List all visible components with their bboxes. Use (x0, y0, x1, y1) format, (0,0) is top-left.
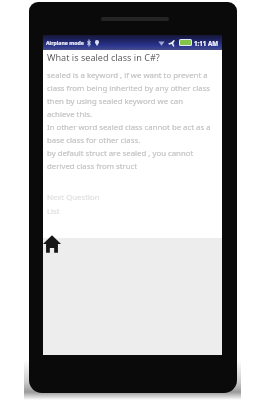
staticText: Airplane mode (46, 39, 84, 46)
staticText: 1:11 AM (194, 39, 219, 47)
button[interactable]: List (47, 206, 60, 217)
staticText: sealed is a keyword , if we want to prev… (47, 70, 212, 171)
button[interactable]: Next Question (47, 192, 100, 203)
staticText: List (47, 206, 60, 217)
staticText: Next Question (47, 192, 100, 203)
button[interactable]: Home (43, 235, 61, 253)
staticText: What is sealed class in C#? (47, 51, 160, 63)
